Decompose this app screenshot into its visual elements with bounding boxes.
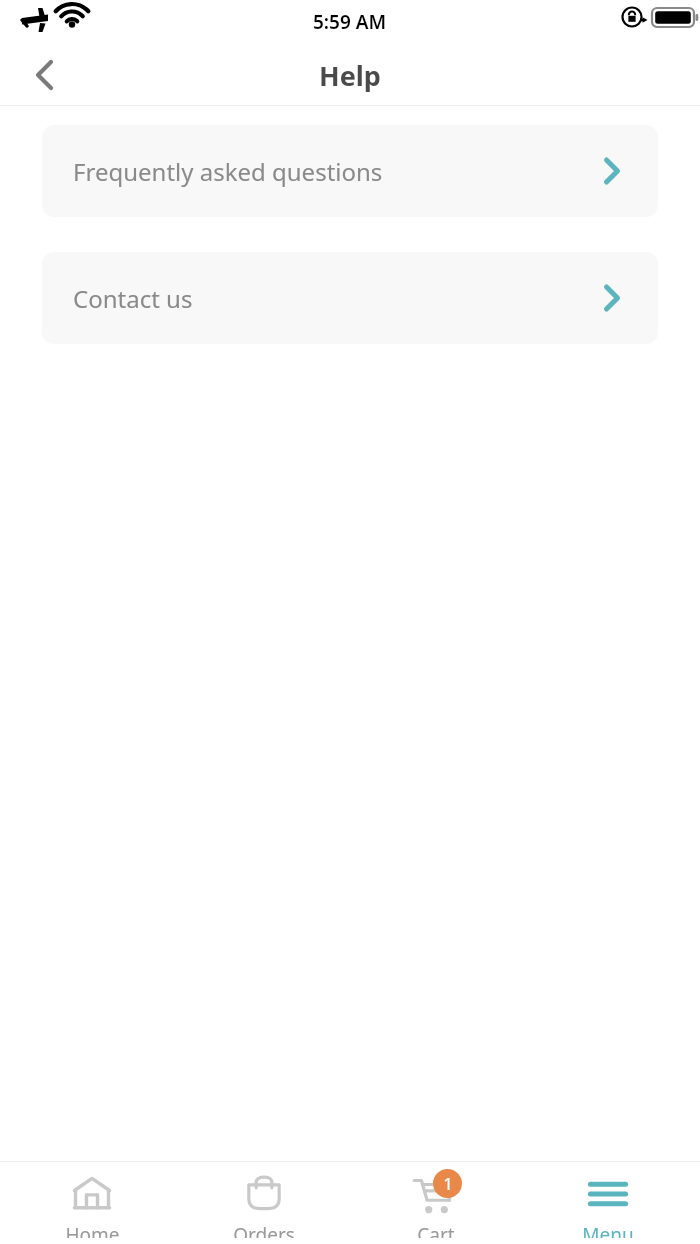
staticText: 5:59 AM: [313, 9, 387, 35]
button[interactable]: Orders: [184, 1162, 344, 1244]
button[interactable]: 1: [356, 1162, 516, 1244]
button[interactable]: Home: [12, 1162, 172, 1244]
button[interactable]: Contact us: [42, 252, 658, 344]
staticText: Contact us: [73, 282, 597, 315]
staticText: Menu: [582, 1222, 634, 1238]
button[interactable]: Menu: [528, 1162, 688, 1244]
staticText: Frequently asked questions: [73, 155, 597, 188]
staticText: Home: [65, 1222, 120, 1238]
staticText: Help: [319, 57, 381, 94]
button[interactable]: Frequently asked questions: [42, 125, 658, 217]
staticText: 1: [443, 1172, 453, 1195]
staticText: Cart: [417, 1222, 455, 1238]
staticText: Orders: [233, 1222, 295, 1238]
button[interactable]: Back: [14, 47, 70, 103]
